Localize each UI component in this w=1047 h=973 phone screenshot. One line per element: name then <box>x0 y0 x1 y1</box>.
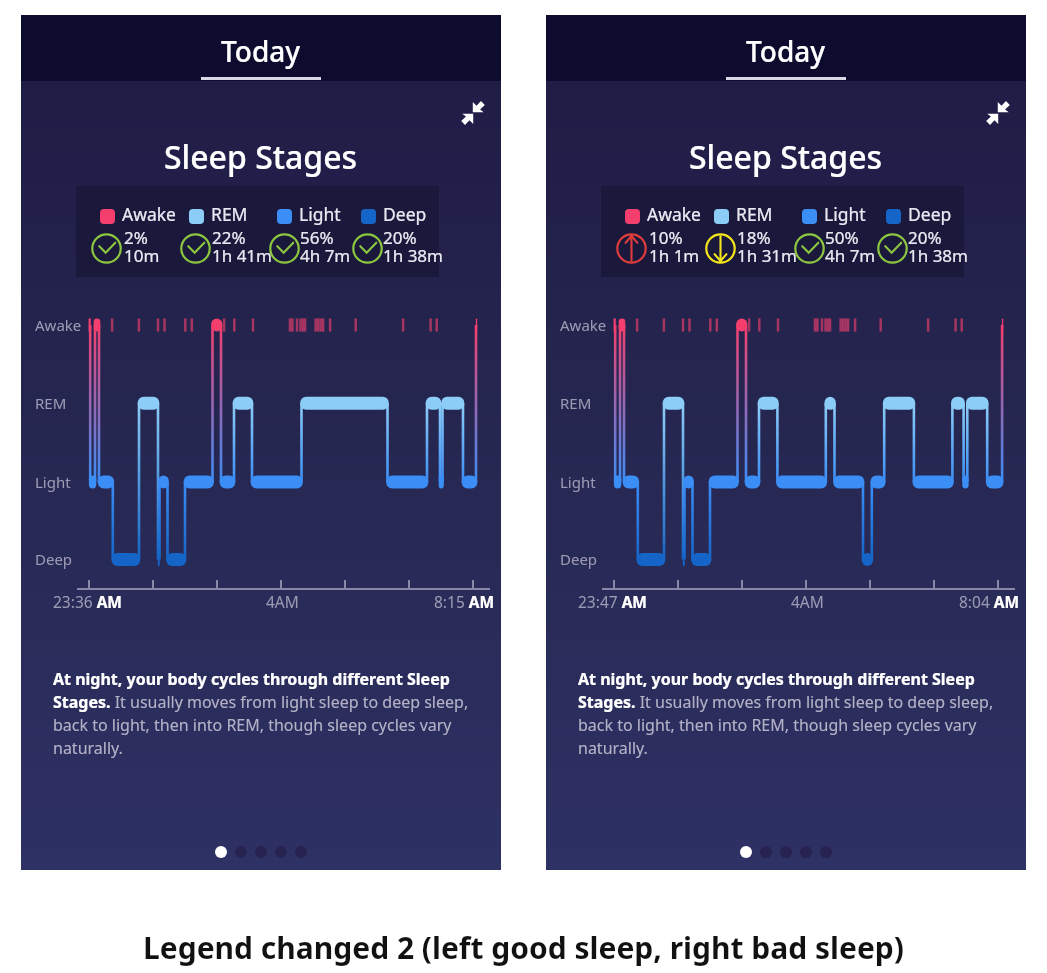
button[interactable]: Deep 20% 1h 38m <box>873 198 960 268</box>
staticText: 1h 31m <box>737 244 797 267</box>
staticText: Awake <box>647 202 701 226</box>
button[interactable] <box>800 846 812 858</box>
button[interactable]: REM 22% 1h 41m <box>176 198 264 268</box>
staticText: Light <box>35 472 71 492</box>
staticText: 4AM <box>791 591 824 612</box>
staticText: 2% <box>124 226 148 249</box>
staticText: Light <box>299 202 341 226</box>
staticText: REM <box>560 393 592 413</box>
staticText: 18% <box>737 226 771 249</box>
button[interactable]: Today <box>171 15 351 81</box>
staticText: Sleep Stages <box>689 135 883 179</box>
button[interactable] <box>275 846 287 858</box>
staticText: Light <box>824 202 866 226</box>
staticText: At night, your body cycles through diffe… <box>578 668 1007 758</box>
staticText: 22% <box>212 226 246 249</box>
staticText: 4AM <box>266 591 299 612</box>
staticText: 23:36 AM <box>53 591 122 612</box>
button[interactable] <box>215 846 227 858</box>
staticText: Light <box>560 472 596 492</box>
button[interactable]: Awake 10% 1h 1m <box>612 198 700 268</box>
staticText: Today <box>746 32 826 70</box>
staticText: Awake <box>122 202 176 226</box>
staticText: 50% <box>825 226 859 249</box>
button[interactable] <box>740 846 752 858</box>
staticText: REM <box>211 202 248 226</box>
staticText: Today <box>221 32 301 70</box>
staticText: Legend changed 2 (left good sleep, right… <box>143 927 904 968</box>
button[interactable] <box>820 846 832 858</box>
staticText: Awake <box>35 315 82 335</box>
button[interactable]: Light 56% 4h 7m <box>265 198 349 268</box>
staticText: 10m <box>124 244 160 267</box>
button[interactable]: Awake 2% 10m <box>87 198 175 268</box>
staticText: 4h 7m <box>300 244 351 267</box>
staticText: REM <box>736 202 773 226</box>
staticText: 4h 7m <box>825 244 876 267</box>
button[interactable]: Light 50% 4h 7m <box>790 198 874 268</box>
button[interactable] <box>780 846 792 858</box>
staticText: 1h 41m <box>212 244 272 267</box>
button[interactable]: Today <box>696 15 876 81</box>
button[interactable] <box>760 846 772 858</box>
staticText: Deep <box>908 202 952 226</box>
staticText: Deep <box>560 549 598 569</box>
button[interactable] <box>235 846 247 858</box>
staticText: 10% <box>649 226 683 249</box>
button[interactable]: Collapse <box>458 98 488 128</box>
staticText: 1h 38m <box>908 244 968 267</box>
staticText: Deep <box>35 549 73 569</box>
staticText: Deep <box>383 202 427 226</box>
staticText: 1h 1m <box>649 244 700 267</box>
staticText: 20% <box>383 226 417 249</box>
button[interactable]: Collapse <box>983 98 1013 128</box>
staticText: REM <box>35 393 67 413</box>
staticText: At night, your body cycles through diffe… <box>53 668 482 758</box>
button[interactable] <box>255 846 267 858</box>
staticText: Sleep Stages <box>164 135 358 179</box>
staticText: 1h 38m <box>383 244 443 267</box>
staticText: 23:47 AM <box>578 591 647 612</box>
staticText: 8:15 AM <box>434 591 495 612</box>
staticText: 20% <box>908 226 942 249</box>
button[interactable]: Deep 20% 1h 38m <box>348 198 435 268</box>
staticText: 8:04 AM <box>959 591 1020 612</box>
button[interactable]: REM 18% 1h 31m <box>701 198 789 268</box>
staticText: 56% <box>300 226 334 249</box>
button[interactable] <box>295 846 307 858</box>
staticText: Awake <box>560 315 607 335</box>
